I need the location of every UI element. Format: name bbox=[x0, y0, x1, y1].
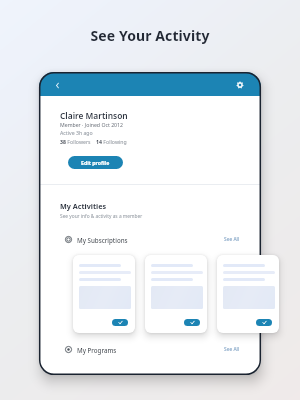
button[interactable]: Subscribed bbox=[112, 319, 128, 326]
staticText: 14 bbox=[96, 138, 102, 145]
staticText: Claire Martinson bbox=[60, 110, 128, 121]
staticText: See Your Activity bbox=[0, 26, 300, 45]
button[interactable]: Subscribed bbox=[184, 319, 200, 326]
button[interactable]: My Programs bbox=[65, 344, 240, 355]
staticText: See All bbox=[224, 346, 240, 353]
staticText: See your info & activity as a member bbox=[60, 213, 143, 220]
staticText: 38 bbox=[60, 138, 66, 145]
button[interactable]: Back bbox=[50, 78, 64, 92]
staticText: My Programs bbox=[77, 346, 117, 354]
staticText: Followers bbox=[66, 138, 91, 145]
button[interactable]: Subscribed bbox=[256, 319, 272, 326]
button[interactable]: Subscribed bbox=[217, 255, 279, 333]
button[interactable]: Subscribed bbox=[145, 255, 207, 333]
staticText: My Activities bbox=[60, 201, 107, 211]
button[interactable]: Edit profile bbox=[68, 156, 123, 169]
button[interactable]: Subscribed bbox=[73, 255, 135, 333]
button[interactable]: My Subscriptions bbox=[65, 234, 240, 245]
staticText: See All bbox=[224, 236, 240, 243]
staticText: Edit profile bbox=[81, 159, 110, 166]
staticText: Active 3h ago bbox=[60, 129, 93, 136]
button[interactable]: Settings bbox=[233, 78, 247, 92]
staticText: My Subscriptions bbox=[77, 236, 128, 244]
staticText: Member · Joined Oct 2012 bbox=[60, 121, 124, 128]
staticText: Following bbox=[102, 138, 127, 145]
